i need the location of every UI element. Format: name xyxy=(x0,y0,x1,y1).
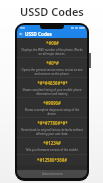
staticText: *#12580*369# xyxy=(37,157,67,163)
staticText: *#1234# xyxy=(43,140,61,146)
staticText: Opens the general service menu to test s… xyxy=(21,68,83,75)
button[interactable]: *#0*# xyxy=(17,58,87,77)
staticText: USSD Codes xyxy=(20,4,84,19)
button[interactable]: *#06# xyxy=(17,38,87,57)
staticText: *#*#7780#*#* xyxy=(37,120,68,126)
staticText: *#*#4636#*#* xyxy=(37,80,68,86)
button[interactable]: Back xyxy=(17,30,25,38)
staticText: Displays the IMEI number of the phone. W… xyxy=(21,48,83,55)
button[interactable]: *#*#7780#*#* xyxy=(17,118,87,137)
button[interactable]: *#*#4636#*#* xyxy=(17,78,87,97)
staticText: *#9090# xyxy=(43,100,61,106)
staticText: USSD Codes xyxy=(25,31,52,37)
button[interactable]: *#12580*369# xyxy=(17,155,87,165)
button[interactable]: *#1234# xyxy=(17,138,87,154)
staticText: Shows complete listing of your mobile ph… xyxy=(21,88,83,95)
staticText: *#0*# xyxy=(46,60,59,66)
button[interactable]: *#9090# xyxy=(17,98,87,117)
staticText: Shows a complete diagnostic setup of the… xyxy=(21,108,83,115)
staticText: Advertisement xyxy=(42,172,63,176)
button[interactable]: Advertisement xyxy=(17,170,87,178)
staticText: Tells you firmware version of the mobile… xyxy=(25,148,79,152)
staticText: Resets back to original factory defaults… xyxy=(21,128,83,135)
staticText: *#06# xyxy=(46,40,59,46)
